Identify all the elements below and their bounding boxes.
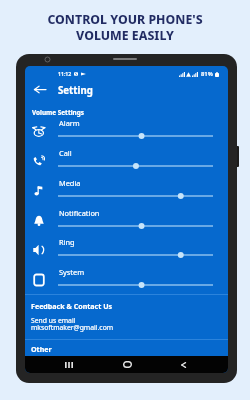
button[interactable]: System <box>25 262 228 292</box>
staticText: Setting <box>58 84 93 97</box>
staticText: mksoftmaker@gmail.com <box>31 323 114 332</box>
button[interactable]: Alarm <box>25 113 228 143</box>
staticText: Alarm <box>59 118 80 128</box>
button[interactable]: Media <box>25 173 228 203</box>
staticText: Volume Settings <box>32 108 84 117</box>
staticText: 81% <box>201 70 213 78</box>
staticText: System <box>59 267 85 277</box>
button[interactable]: Call <box>25 143 228 173</box>
staticText: Ring <box>59 237 75 247</box>
staticText: Send us email <box>31 316 76 325</box>
button[interactable]: Recent apps <box>59 357 79 372</box>
staticText: Notification <box>59 208 100 218</box>
staticText: Call <box>59 148 72 158</box>
button[interactable]: Ring <box>25 232 228 262</box>
button[interactable]: Back <box>32 81 48 97</box>
staticText: Media <box>59 178 81 188</box>
staticText: VOLUME EASILY <box>76 27 174 44</box>
button[interactable]: Home <box>117 357 137 372</box>
staticText: Feedback & Contact Us <box>31 301 113 311</box>
button[interactable]: Notification <box>25 203 228 233</box>
staticText: Other <box>31 344 52 354</box>
button[interactable]: Back <box>173 357 193 372</box>
staticText: CONTROL YOUR PHONE'S <box>47 11 203 28</box>
staticText: 11:12 <box>58 70 72 77</box>
